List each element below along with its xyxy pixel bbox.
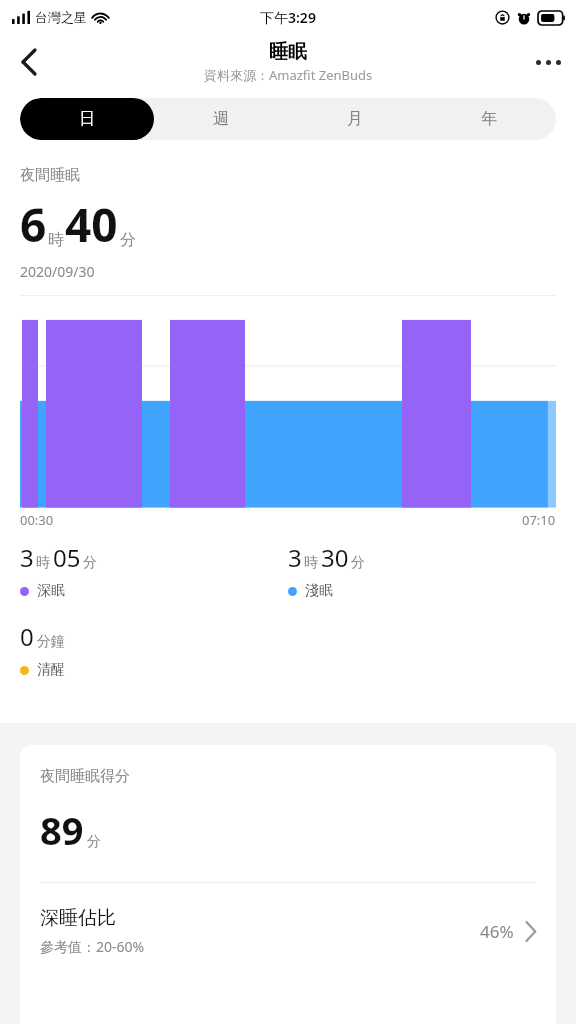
staticText: 30 [321, 541, 349, 574]
staticText: 40 [65, 193, 118, 256]
staticText: 日 [79, 109, 95, 129]
staticText: 6 [20, 193, 47, 256]
staticText: 清醒 [37, 661, 65, 679]
staticText: 3 [20, 541, 34, 574]
button[interactable]: 年 [422, 98, 556, 140]
button[interactable]: 週 [154, 98, 288, 140]
staticText: 05 [53, 541, 81, 574]
staticText: 46% [480, 920, 514, 943]
staticText: 3 [288, 541, 302, 574]
staticText: 分 [83, 554, 97, 572]
staticText: 深眠 [37, 582, 65, 600]
button[interactable]: 月 [288, 98, 422, 140]
staticText: 分鐘 [37, 633, 65, 651]
staticText: 資料來源：Amazfit ZenBuds [204, 66, 373, 84]
staticText: 07:10 [522, 511, 556, 529]
staticText: 年 [481, 109, 497, 129]
staticText: 時 [48, 230, 64, 250]
staticText: 夜間睡眠得分 [40, 767, 130, 786]
button[interactable]: 深睡佔比 [40, 883, 536, 979]
button[interactable]: Back [0, 34, 56, 90]
staticText: 參考值：20-60% [40, 937, 145, 956]
staticText: 時 [304, 554, 318, 572]
staticText: 淺眠 [305, 582, 333, 600]
staticText: 0 [20, 620, 34, 653]
staticText: 週 [213, 109, 229, 129]
staticText: 夜間睡眠 [20, 166, 80, 185]
button[interactable]: More options [520, 34, 576, 90]
staticText: 分 [87, 833, 101, 851]
staticText: 台灣之星 [35, 9, 87, 25]
staticText: 睡眠 [269, 40, 307, 64]
staticText: 2020/09/30 [20, 262, 95, 281]
staticText: 月 [347, 109, 363, 129]
staticText: 分 [120, 230, 136, 250]
staticText: 深睡佔比 [40, 906, 116, 930]
staticText: 時 [36, 554, 50, 572]
staticText: 下午3:29 [260, 8, 316, 27]
staticText: 00:30 [20, 511, 54, 529]
staticText: 分 [351, 554, 365, 572]
staticText: 89 [40, 804, 84, 856]
button[interactable]: 日 [20, 98, 154, 140]
